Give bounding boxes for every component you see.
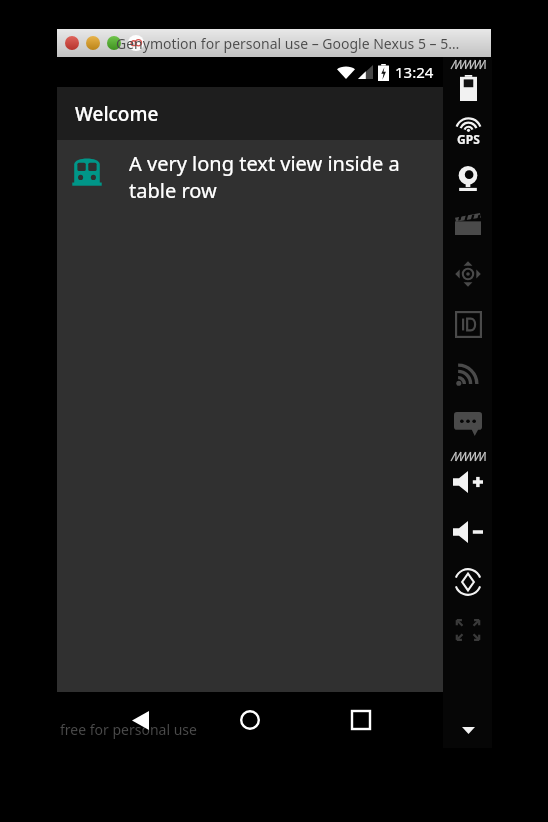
button[interactable]: Back	[112, 692, 168, 748]
button[interactable]: Volume down	[446, 517, 490, 547]
staticText: Genymotion for personal use – Google Nex…	[116, 34, 460, 53]
staticText: 13:24	[395, 62, 434, 82]
button[interactable]: Scale 1:1	[446, 615, 490, 645]
button[interactable]: SMS	[446, 409, 490, 439]
button[interactable]: Video capture	[446, 209, 490, 239]
staticText: GPS	[457, 131, 480, 147]
button[interactable]: Rotate	[446, 567, 490, 597]
button[interactable]: Network	[446, 359, 490, 389]
button[interactable]: Accelerometer	[446, 259, 490, 289]
button[interactable]: A very long text view inside a table row	[57, 140, 443, 204]
button[interactable]: More	[448, 718, 488, 742]
staticText: A very long text view inside a table row	[129, 150, 443, 204]
button[interactable]: Home	[222, 692, 278, 748]
button[interactable]: Battery	[446, 73, 490, 103]
button[interactable]: Camera	[446, 163, 490, 193]
button[interactable]: GPS	[446, 117, 490, 147]
button[interactable]: Window button	[65, 36, 79, 50]
button[interactable]: Window button	[86, 36, 100, 50]
staticText: free for personal use	[60, 720, 197, 739]
button[interactable]: Identifiers	[446, 309, 490, 339]
button[interactable]: Window button	[107, 36, 121, 50]
button[interactable]: Recent apps	[333, 692, 389, 748]
button[interactable]: Volume up	[446, 467, 490, 497]
staticText: Welcome	[75, 101, 159, 127]
